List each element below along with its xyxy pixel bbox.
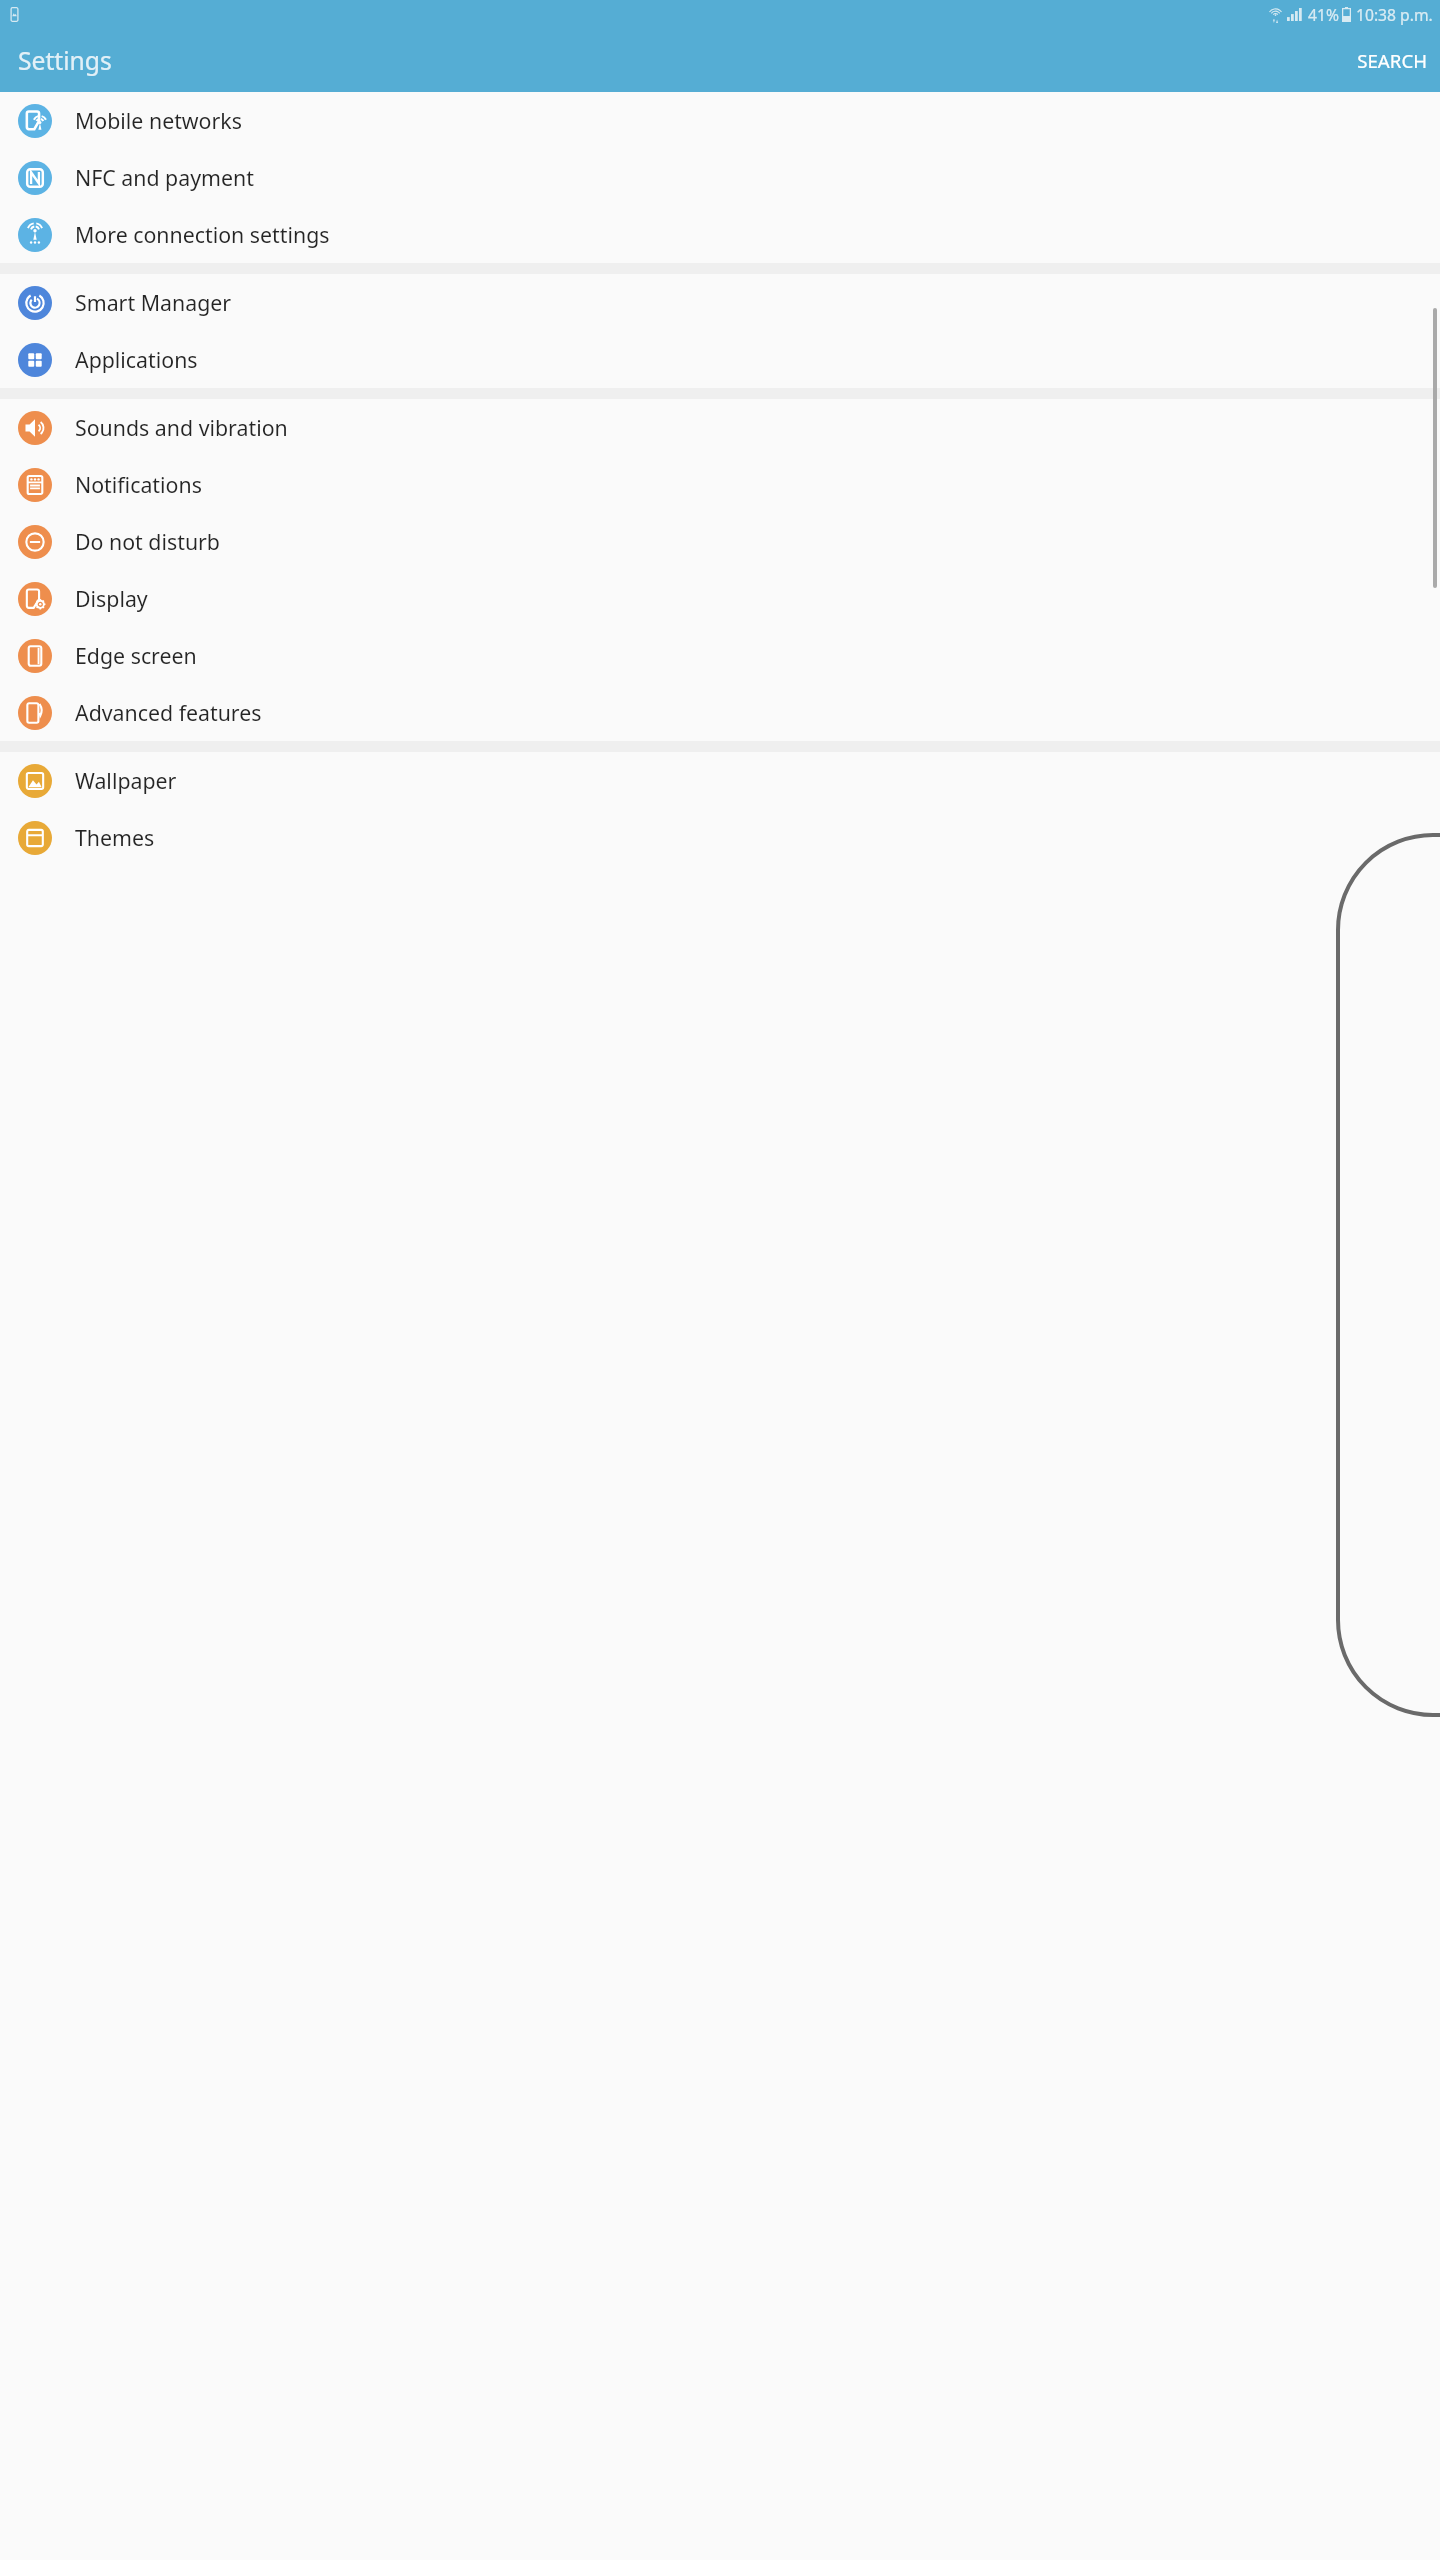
button[interactable]: Mobile networks [0, 92, 1440, 149]
button[interactable]: Themes [0, 809, 1440, 866]
button[interactable]: Applications [0, 331, 1440, 388]
button[interactable]: Do not disturb [0, 513, 1440, 570]
staticText: Themes [75, 823, 155, 852]
button[interactable]: SEARCH [1344, 38, 1440, 83]
button[interactable]: Advanced features [0, 684, 1440, 741]
button[interactable]: Wallpaper [0, 752, 1440, 809]
staticText: Notifications [75, 470, 202, 499]
staticText: 41% [1308, 4, 1339, 25]
button[interactable]: Notifications [0, 456, 1440, 513]
button[interactable]: Edge screen [0, 627, 1440, 684]
staticText: Do not disturb [75, 527, 220, 556]
staticText: Settings [18, 44, 112, 78]
button[interactable]: More connection settings [0, 206, 1440, 263]
staticText: Display [75, 584, 148, 613]
staticText: Edge screen [75, 641, 197, 670]
button[interactable]: Smart Manager [0, 274, 1440, 331]
staticText: Applications [75, 345, 198, 374]
staticText: Advanced features [75, 698, 262, 727]
staticText: 10:38 p.m. [1356, 4, 1433, 25]
staticText: NFC and payment [75, 163, 254, 192]
staticText: More connection settings [75, 220, 330, 249]
button[interactable]: Display [0, 570, 1440, 627]
staticText: Mobile networks [75, 106, 242, 135]
staticText: Wallpaper [75, 766, 177, 795]
button[interactable]: NFC and payment [0, 149, 1440, 206]
staticText: Sounds and vibration [75, 413, 288, 442]
button[interactable]: Sounds and vibration [0, 399, 1440, 456]
staticText: SEARCH [1357, 48, 1427, 73]
staticText: Smart Manager [75, 288, 232, 317]
